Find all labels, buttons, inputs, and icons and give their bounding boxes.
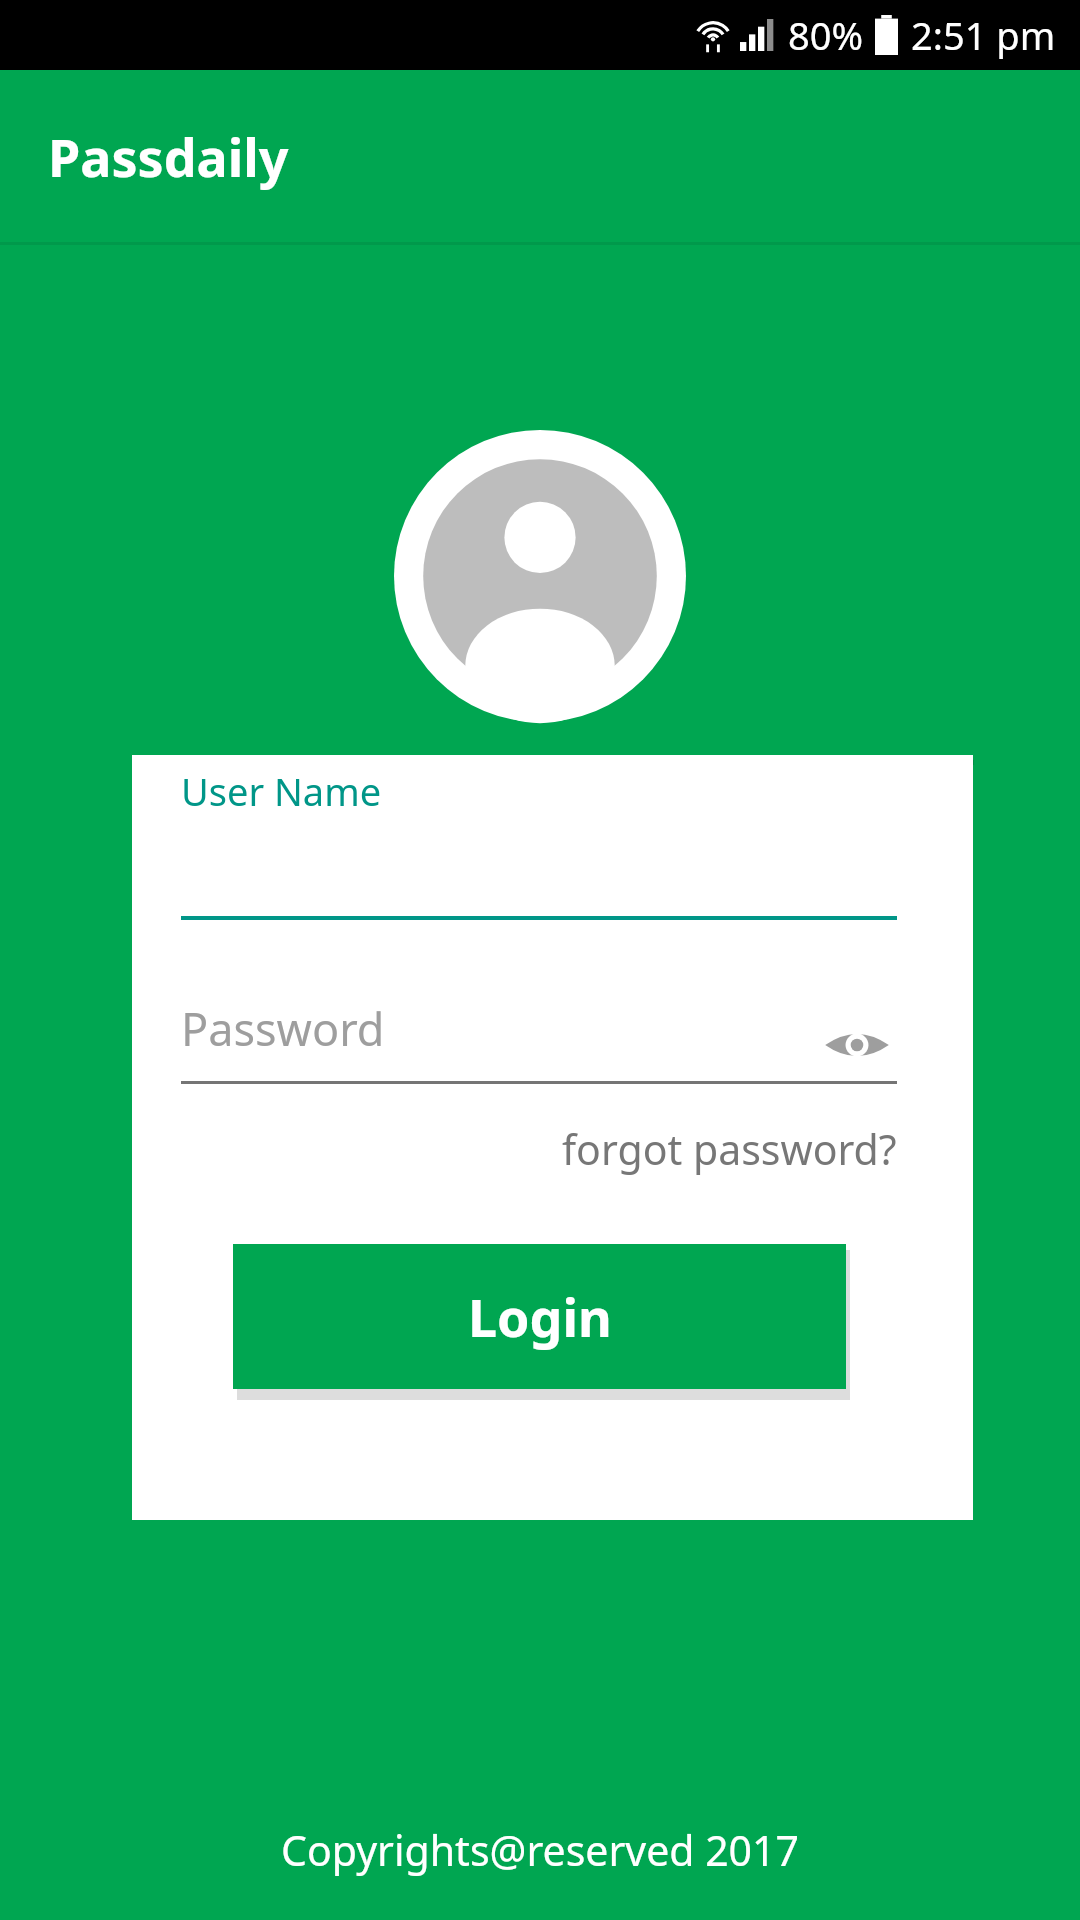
staticText: forgot password?: [562, 1121, 897, 1177]
staticText: User Name: [181, 765, 382, 817]
staticText: Login: [468, 1281, 612, 1352]
button[interactable]: forgot password?: [560, 1113, 897, 1185]
staticText: 2:51 pm: [911, 9, 1056, 61]
staticText: Copyrights@reserved 2017: [0, 1822, 1080, 1878]
staticText: Password: [181, 998, 385, 1059]
button[interactable]: Password: [181, 990, 897, 1084]
other: Profile avatar: [394, 430, 686, 722]
staticText: Passdaily: [48, 121, 289, 192]
button[interactable]: User Name: [181, 745, 897, 920]
staticText: 80%: [788, 9, 864, 61]
button[interactable]: Show password: [820, 1008, 894, 1082]
button[interactable]: Login: [233, 1244, 846, 1389]
